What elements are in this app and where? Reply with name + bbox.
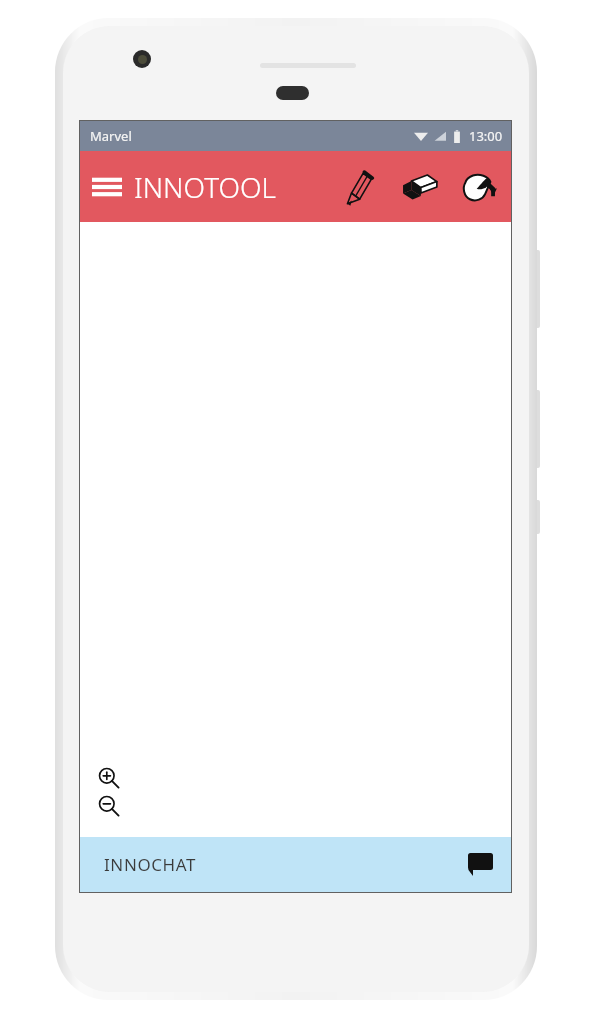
button[interactable]: INNOTOOL [92,168,276,206]
button[interactable]: Zoom out [96,793,122,819]
button[interactable]: Zoom in [96,765,122,791]
staticText: INNOCHAT [104,853,197,876]
staticText: 13:00 [469,127,503,145]
staticText: Marvel [90,127,132,145]
button[interactable]: Eraser [397,165,441,209]
staticText: INNOTOOL [134,168,276,206]
button[interactable]: INNOCHAT [80,837,511,892]
button[interactable]: Pencil [337,165,381,209]
button[interactable]: Fill color [457,165,501,209]
